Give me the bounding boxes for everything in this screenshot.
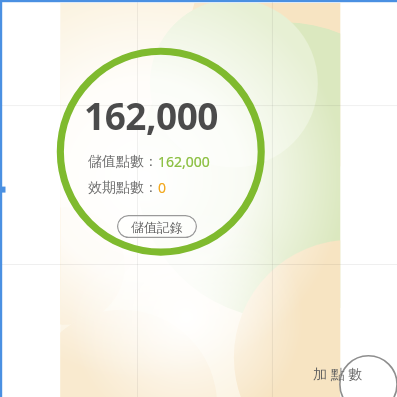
staticText: 0 xyxy=(158,178,167,197)
staticText: 加 點 數 xyxy=(313,364,363,383)
staticText: 162,000 xyxy=(158,152,210,171)
button[interactable]: 加 點 數 xyxy=(313,364,363,383)
button[interactable]: 儲值記錄 xyxy=(117,215,197,238)
staticText: 162,000 xyxy=(84,90,219,140)
staticText: 儲值點數： xyxy=(88,153,158,171)
button[interactable]: 加點數 xyxy=(352,352,396,396)
staticText: 效期點數： xyxy=(88,179,158,197)
staticText: 儲值記錄 xyxy=(131,219,183,235)
